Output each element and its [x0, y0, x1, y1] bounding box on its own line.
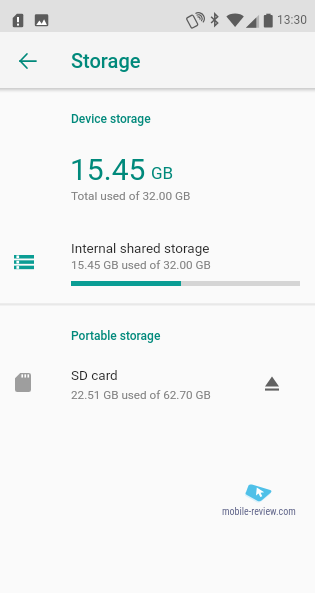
- staticText: Device storage: [71, 112, 151, 126]
- staticText: Internal shared storage: [71, 240, 210, 256]
- staticText: mobile-review.com: [222, 506, 296, 518]
- staticText: 15.45 GB used of 32.00 GB: [71, 258, 211, 272]
- staticText: Portable storage: [71, 329, 161, 343]
- button[interactable]: Eject SD card: [252, 360, 292, 408]
- button[interactable]: SD card: [0, 358, 315, 406]
- staticText: SD card: [71, 367, 118, 383]
- staticText: 15.45: [70, 152, 146, 187]
- staticText: Storage: [71, 49, 141, 72]
- button[interactable]: Navigate up: [14, 47, 42, 75]
- staticText: GB: [151, 163, 174, 183]
- staticText: Total used of 32.00 GB: [71, 189, 191, 203]
- staticText: 22.51 GB used of 62.70 GB: [71, 388, 211, 402]
- staticText: 13:30: [277, 13, 307, 27]
- button[interactable]: Internal shared storage: [0, 228, 315, 292]
